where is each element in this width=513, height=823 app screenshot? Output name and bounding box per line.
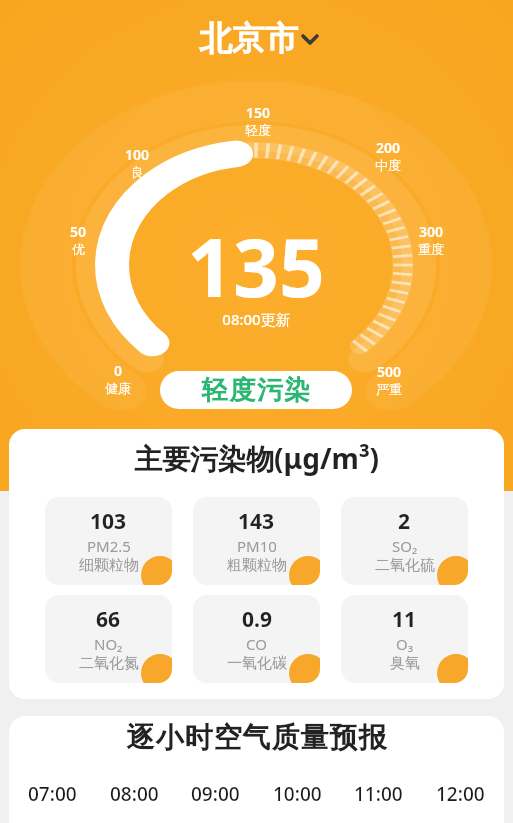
staticText: 200 xyxy=(376,138,401,157)
button[interactable]: 103 xyxy=(45,497,172,585)
staticText: PM2.5 xyxy=(87,536,131,556)
staticText: SO₂ xyxy=(392,536,418,556)
staticText: 10:00 xyxy=(273,781,322,807)
staticText: 100 xyxy=(125,145,150,164)
staticText: 12:00 xyxy=(436,781,485,807)
staticText: 07:00 xyxy=(28,781,77,807)
button[interactable]: 66 xyxy=(45,595,172,683)
button[interactable]: 08:00 xyxy=(110,781,159,807)
staticText: 11 xyxy=(392,605,417,634)
staticText: 09:00 xyxy=(191,781,240,807)
staticText: 二氧化氮 xyxy=(79,654,139,673)
button[interactable]: 10:00 xyxy=(273,781,322,807)
staticText: 二氧化硫 xyxy=(375,556,435,575)
staticText: 健康 xyxy=(105,380,131,396)
staticText: 143 xyxy=(238,507,275,536)
staticText: 150 xyxy=(246,103,271,122)
staticText: PM10 xyxy=(237,536,277,556)
staticText: 0 xyxy=(114,361,123,380)
button[interactable]: 07:00 xyxy=(28,781,77,807)
staticText: 08:00更新 xyxy=(222,309,291,329)
staticText: 103 xyxy=(90,507,127,536)
staticText: 08:00 xyxy=(110,781,159,807)
staticText: 中度 xyxy=(375,157,401,173)
button[interactable]: 143 xyxy=(193,497,320,585)
staticText: 细颗粒物 xyxy=(79,556,139,575)
staticText: 66 xyxy=(96,605,121,634)
staticText: 重度 xyxy=(418,241,444,257)
staticText: 北京市 xyxy=(199,18,298,60)
staticText: 135 xyxy=(187,211,325,311)
staticText: 300 xyxy=(419,222,444,241)
staticText: 主要污染物(μg/m³) xyxy=(134,439,380,477)
staticText: 逐小时空气质量预报 xyxy=(126,720,387,755)
staticText: CO xyxy=(246,634,267,654)
staticText: NO₂ xyxy=(94,634,123,654)
staticText: 臭氧 xyxy=(390,654,420,673)
staticText: 粗颗粒物 xyxy=(227,556,287,575)
staticText: O₃ xyxy=(396,634,413,654)
button[interactable]: 北京市 xyxy=(148,14,348,64)
staticText: 良 xyxy=(131,164,144,180)
button[interactable]: 轻度污染 xyxy=(160,371,352,409)
button[interactable]: 0.9 xyxy=(193,595,320,683)
staticText: 0.9 xyxy=(242,605,272,634)
staticText: 轻度 xyxy=(245,122,271,138)
staticText: 严重 xyxy=(376,381,402,397)
staticText: 优 xyxy=(72,241,85,257)
staticText: 2 xyxy=(398,507,411,536)
button[interactable]: 09:00 xyxy=(191,781,240,807)
staticText: 一氧化碳 xyxy=(227,654,287,673)
button[interactable]: 11:00 xyxy=(354,781,403,807)
staticText: 50 xyxy=(70,222,87,241)
staticText: 轻度污染 xyxy=(201,374,311,407)
button[interactable]: 11 xyxy=(341,595,468,683)
staticText: 500 xyxy=(377,362,402,381)
button[interactable]: 12:00 xyxy=(436,781,485,807)
staticText: 11:00 xyxy=(354,781,403,807)
button[interactable]: 2 xyxy=(341,497,468,585)
